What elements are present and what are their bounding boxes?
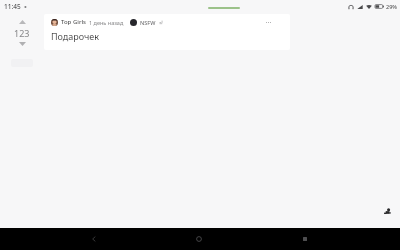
button[interactable]: Recent apps (294, 228, 316, 250)
button[interactable]: More options (262, 18, 274, 26)
button[interactable]: Upvote (9, 17, 35, 26)
staticText: 29% (386, 3, 397, 10)
staticText: 11:45 (4, 2, 21, 11)
staticText: 123 (14, 27, 30, 39)
button[interactable]: Back (83, 228, 105, 250)
staticText: Подарочек (51, 30, 100, 42)
button[interactable]: Top Girls (44, 14, 290, 50)
staticText: 1 день назад (89, 19, 124, 26)
staticText: Top Girls (61, 18, 86, 26)
button[interactable]: Downvote (9, 39, 35, 49)
button[interactable]: Home (188, 228, 210, 250)
staticText: NSFW (140, 19, 156, 26)
